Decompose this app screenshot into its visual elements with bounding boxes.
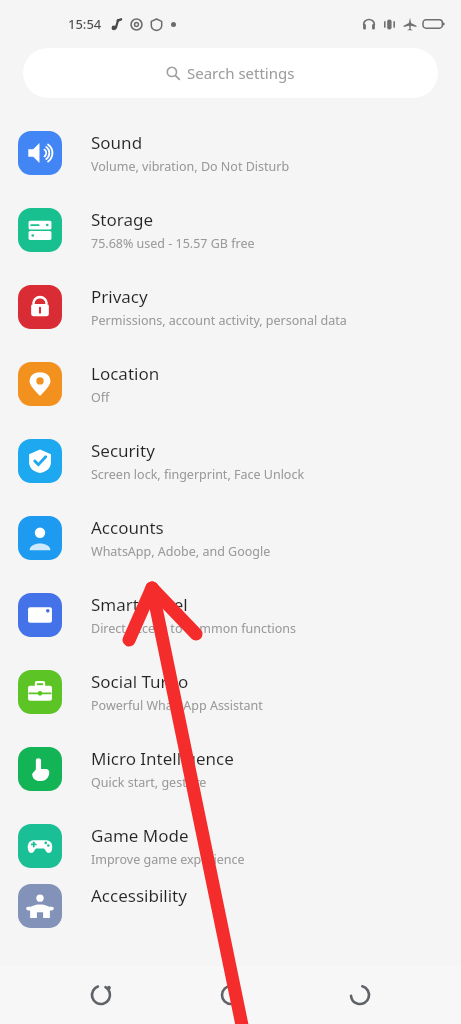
staticText: Improve game experience xyxy=(91,851,245,868)
button[interactable]: Game Mode xyxy=(0,807,461,884)
button[interactable]: Sound xyxy=(0,114,461,191)
staticText: 15:54 xyxy=(68,15,102,33)
staticText: Search settings xyxy=(187,63,295,83)
button[interactable]: Location xyxy=(0,345,461,422)
staticText: Accounts xyxy=(91,516,164,539)
staticText: Accessibility xyxy=(91,884,187,907)
staticText: Powerful WhatsApp Assistant xyxy=(91,697,263,714)
button[interactable]: Privacy xyxy=(0,268,461,345)
staticText: WhatsApp, Adobe, and Google xyxy=(91,543,271,560)
staticText: Volume, vibration, Do Not Disturb xyxy=(91,158,290,175)
button[interactable]: Accessibility xyxy=(0,884,461,944)
button[interactable]: Home xyxy=(203,967,259,1023)
button[interactable]: Accounts xyxy=(0,499,461,576)
staticText: Game Mode xyxy=(91,824,189,847)
staticText: Security xyxy=(91,439,155,462)
button[interactable]: Smart Panel xyxy=(0,576,461,653)
button[interactable]: Micro Intelligence xyxy=(0,730,461,807)
staticText: Micro Intelligence xyxy=(91,747,234,770)
staticText: Location xyxy=(91,362,160,385)
staticText: Sound xyxy=(91,131,143,154)
staticText: Privacy xyxy=(91,285,148,308)
button[interactable]: Storage xyxy=(0,191,461,268)
staticText: Storage xyxy=(91,208,154,231)
button[interactable]: Security xyxy=(0,422,461,499)
staticText: 75.68% used - 15.57 GB free xyxy=(91,235,255,252)
button[interactable]: Back xyxy=(332,967,388,1023)
staticText: Smart Panel xyxy=(91,593,188,616)
button[interactable]: Search settings xyxy=(23,48,438,98)
staticText: Screen lock, fingerprint, Face Unlock xyxy=(91,466,305,483)
staticText: Permissions, account activity, personal … xyxy=(91,312,347,329)
button[interactable]: Social Turbo xyxy=(0,653,461,730)
staticText: Direct access to common functions xyxy=(91,620,296,637)
button[interactable]: Recent apps xyxy=(73,967,129,1023)
staticText: Off xyxy=(91,389,110,406)
staticText: Quick start, gesture xyxy=(91,774,207,791)
staticText: Social Turbo xyxy=(91,670,189,693)
